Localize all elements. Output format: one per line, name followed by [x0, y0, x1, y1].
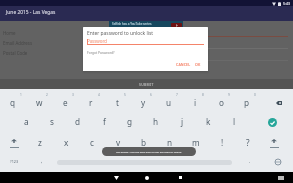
button[interactable]: ! — [209, 132, 235, 152]
staticText: 5:43 — [283, 1, 291, 6]
button[interactable]: b — [131, 132, 157, 152]
staticText: l — [233, 116, 236, 127]
button[interactable]: a — [13, 111, 39, 131]
staticText: 7 — [176, 93, 178, 97]
staticText: n — [167, 137, 173, 148]
staticText: z — [38, 137, 42, 148]
staticText: 1 — [20, 93, 22, 97]
staticText: w — [36, 97, 43, 108]
staticText: 8 — [202, 93, 204, 97]
button[interactable]: n — [157, 132, 183, 152]
staticText: x — [64, 137, 69, 148]
staticText: Email Address — [3, 40, 33, 45]
staticText: g — [127, 116, 133, 127]
staticText: v — [116, 137, 121, 148]
staticText: t — [116, 97, 119, 108]
staticText: y — [141, 97, 146, 108]
staticText: ?123 — [10, 159, 19, 164]
staticText: 0 — [254, 93, 256, 97]
staticText: Home — [3, 30, 16, 35]
button[interactable]: d — [65, 111, 91, 131]
staticText: c — [90, 137, 94, 148]
button[interactable]: CANCEL — [175, 61, 192, 67]
button[interactable]: g — [117, 111, 143, 131]
button[interactable]: Change language — [266, 153, 290, 170]
staticText: SUBMIT — [139, 82, 154, 87]
staticText: Forgot Password? — [87, 50, 115, 54]
staticText: CANCEL — [176, 62, 191, 67]
staticText: Enter password to unlock list — [87, 30, 154, 37]
staticText: June 2015 - Las Vegas — [6, 9, 56, 16]
staticText: d — [75, 116, 81, 127]
staticText: 6 — [150, 93, 152, 97]
button[interactable]: SUBMIT — [0, 79, 293, 89]
staticText: m — [192, 137, 200, 148]
staticText: Password — [87, 38, 107, 44]
staticText: h — [153, 116, 159, 127]
staticText: p — [244, 97, 250, 108]
staticText: i — [194, 97, 197, 108]
staticText: 4 — [98, 93, 100, 97]
staticText: e — [63, 97, 68, 108]
button[interactable]: Postal Code — [3, 50, 81, 55]
staticText: j — [181, 116, 184, 127]
button[interactable]: u — [156, 92, 182, 112]
staticText: , — [41, 158, 43, 165]
staticText: ! — [221, 137, 224, 148]
button[interactable]: r — [78, 92, 104, 112]
staticText: . — [249, 158, 251, 165]
button[interactable]: Shift — [1, 131, 27, 151]
staticText: q — [10, 97, 16, 108]
button[interactable]: m — [183, 132, 209, 152]
staticText: OK — [195, 62, 201, 67]
button[interactable]: v — [105, 132, 131, 152]
staticText: ? — [246, 137, 250, 148]
button[interactable]: , — [30, 153, 54, 170]
staticText: k — [206, 116, 211, 127]
button[interactable]: ?123 — [2, 153, 26, 170]
button[interactable]: k — [195, 111, 221, 131]
staticText: b — [141, 137, 147, 148]
button[interactable]: l — [221, 111, 247, 131]
button[interactable]: Selfish has a YouTube series — [109, 21, 183, 27]
button[interactable]: Recent apps — [170, 172, 190, 183]
button[interactable]: z — [27, 132, 53, 152]
button[interactable]: w — [26, 92, 52, 112]
button[interactable]: y — [130, 92, 156, 112]
button[interactable]: j — [169, 111, 195, 131]
staticText: 2 — [46, 93, 48, 97]
button[interactable]: o — [208, 92, 234, 112]
button[interactable]: Backspace — [262, 93, 293, 113]
button[interactable]: Home — [137, 172, 157, 183]
staticText: 9 — [228, 93, 230, 97]
button[interactable]: p — [234, 92, 260, 112]
staticText: s — [50, 116, 54, 127]
staticText: Postal Code — [3, 50, 28, 55]
staticText: List locked - use the back icon on the t… — [116, 150, 182, 153]
button[interactable]: h — [143, 111, 169, 131]
button[interactable]: Home — [3, 30, 81, 35]
button[interactable]: Back — [106, 172, 126, 183]
staticText: 3 — [72, 93, 74, 97]
button[interactable]: Play on YouTube — [171, 23, 182, 27]
staticText: a — [24, 116, 29, 127]
button[interactable]: i — [182, 92, 208, 112]
button[interactable]: Shift — [261, 131, 287, 151]
button[interactable]: s — [39, 111, 65, 131]
button[interactable]: ? — [235, 132, 261, 152]
button[interactable]: c — [79, 132, 105, 152]
staticText: o — [219, 97, 224, 108]
staticText: Selfish has a YouTube series — [112, 22, 152, 26]
staticText: u — [166, 97, 172, 108]
button[interactable]: e — [52, 92, 78, 112]
button[interactable]: t — [104, 92, 130, 112]
button[interactable]: Email Address — [3, 40, 81, 45]
button[interactable]: f — [91, 111, 117, 131]
button[interactable]: OK — [193, 61, 202, 67]
button[interactable]: Enter — [260, 113, 293, 133]
button[interactable]: q — [0, 92, 26, 112]
button[interactable]: Switch keyboard — [272, 172, 290, 183]
button[interactable]: x — [53, 132, 79, 152]
